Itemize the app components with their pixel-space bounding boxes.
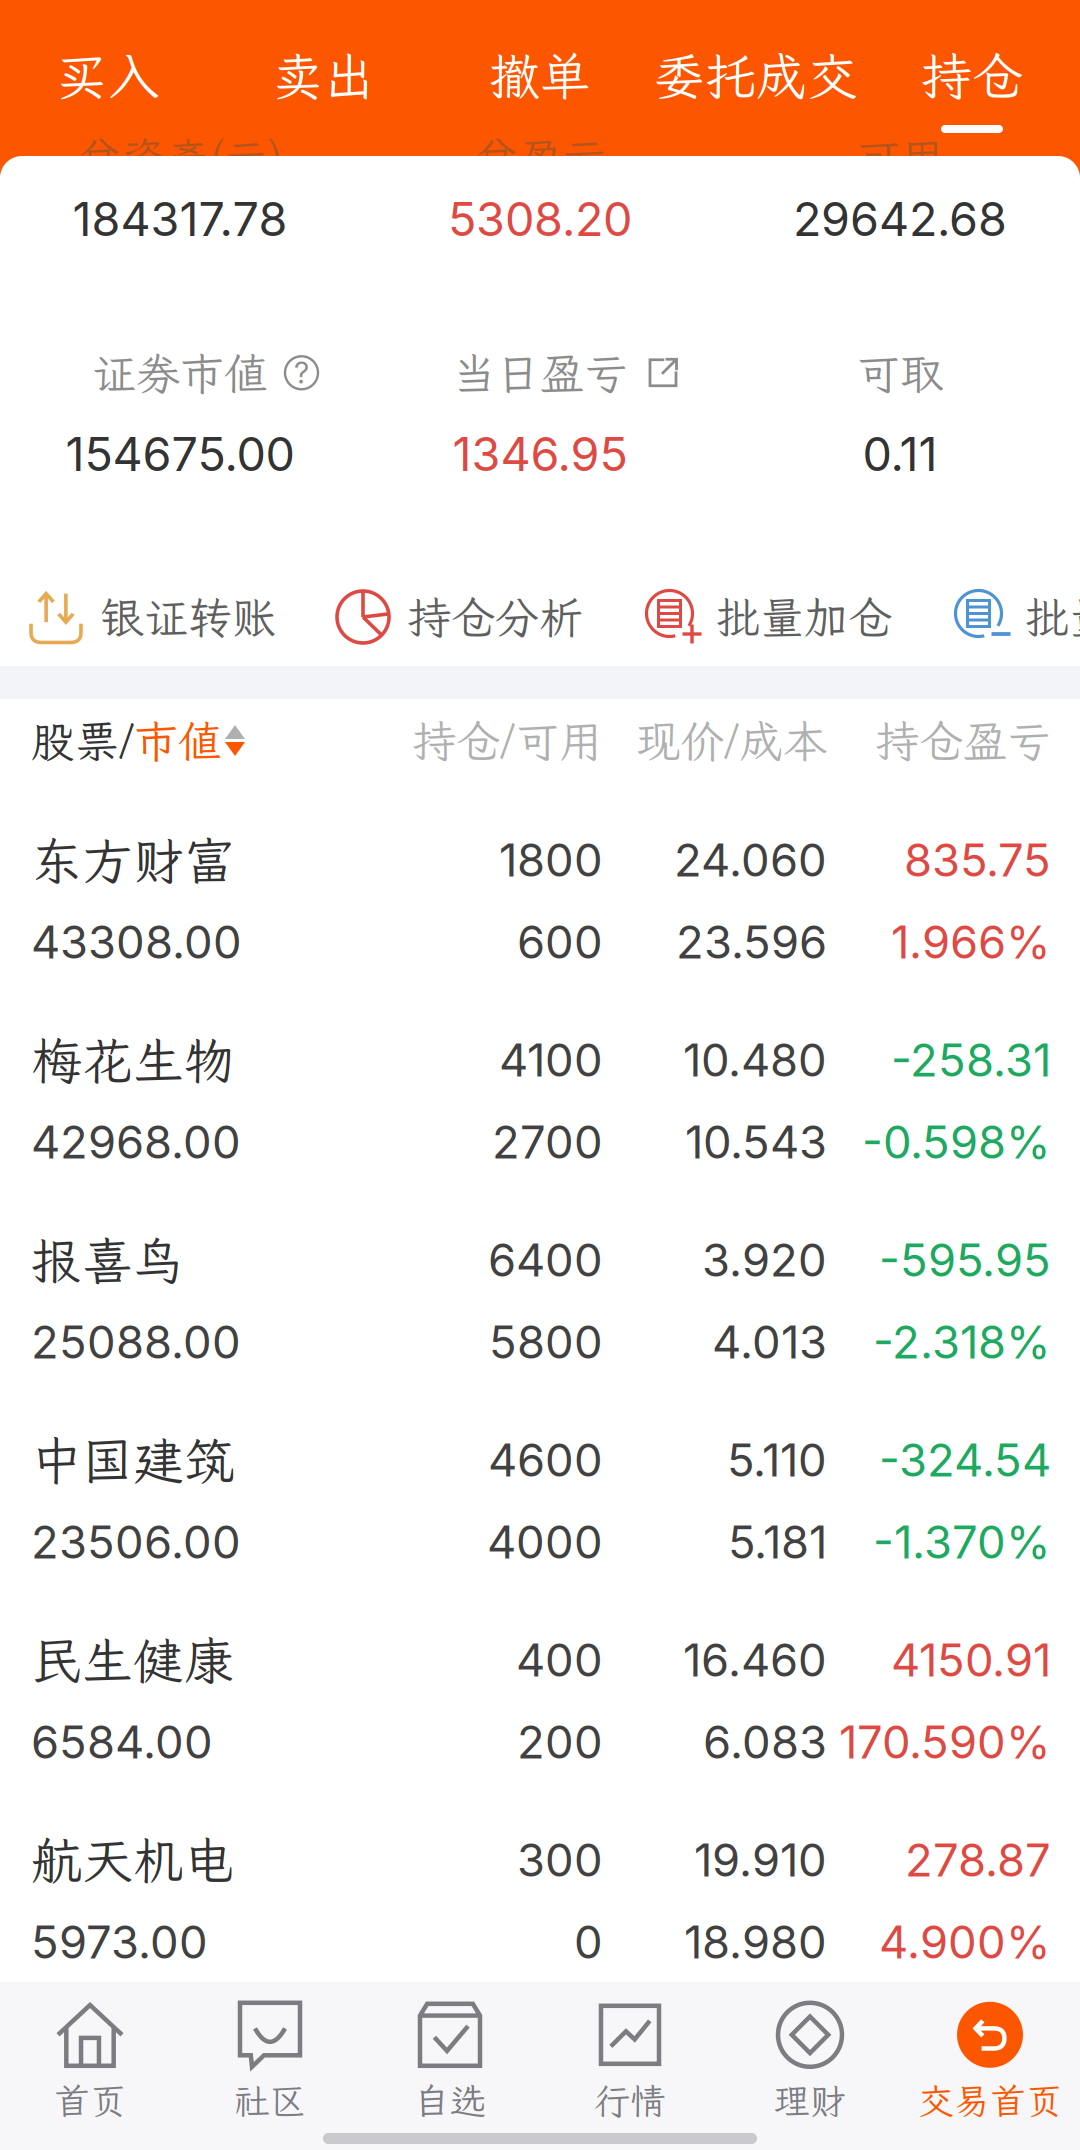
staticText: 1346.95 xyxy=(452,426,627,482)
staticText: -258.31 xyxy=(891,1033,1051,1087)
button[interactable]: 批量加仓 xyxy=(0,579,892,655)
staticText: 5.110 xyxy=(727,1433,827,1487)
staticText: -595.95 xyxy=(879,1233,1051,1287)
staticText: 自选 xyxy=(414,2077,486,2124)
button[interactable]: 自选 xyxy=(360,1982,540,2118)
staticText: 154675.00 xyxy=(65,426,294,482)
button[interactable]: 交易首页 xyxy=(900,1982,1080,2118)
staticText: 航天机电 xyxy=(31,1827,235,1893)
staticText: 6584.00 xyxy=(31,1715,213,1769)
staticText: 持仓分析 xyxy=(407,588,583,646)
staticText: 23506.00 xyxy=(31,1515,241,1569)
staticText: 5.181 xyxy=(728,1515,827,1569)
button[interactable]: 梅花生物 xyxy=(0,982,1080,1182)
staticText: 总资产(元) xyxy=(77,129,283,187)
staticText: 278.87 xyxy=(905,1833,1051,1887)
staticText: 首页 xyxy=(54,2077,126,2124)
staticText: 银证转账 xyxy=(100,588,276,646)
staticText: 600 xyxy=(517,915,603,969)
staticText: 24.060 xyxy=(674,833,827,887)
staticText: -1.370% xyxy=(873,1515,1051,1569)
staticText: 社区 xyxy=(234,2077,306,2124)
staticText: 0 xyxy=(574,1915,603,1969)
button[interactable]: 首页 xyxy=(0,1982,180,2118)
staticText: 300 xyxy=(517,1833,603,1887)
staticText: 400 xyxy=(516,1633,603,1687)
staticText: 批量加仓 xyxy=(716,588,892,646)
staticText: 民生健康 xyxy=(31,1627,235,1693)
staticText: 25088.00 xyxy=(31,1315,241,1369)
staticText: 交易首页 xyxy=(918,2077,1062,2124)
button[interactable]: 卖出 xyxy=(216,0,432,145)
button[interactable]: 委托成交 xyxy=(648,0,864,145)
button[interactable]: 民生健康 xyxy=(0,1582,1080,1782)
button[interactable]: 报喜鸟 xyxy=(0,1182,1080,1382)
button[interactable]: 银证转账 xyxy=(0,579,276,655)
staticText: 5800 xyxy=(489,1315,603,1369)
staticText: 3.920 xyxy=(702,1233,827,1287)
staticText: 可取 xyxy=(856,344,944,402)
staticText: 19.910 xyxy=(694,1833,827,1887)
staticText: 持仓/可用 xyxy=(412,711,603,769)
staticText: 835.75 xyxy=(904,833,1051,887)
staticText: 42968.00 xyxy=(31,1115,241,1169)
staticText: 行情 xyxy=(594,2077,666,2124)
button[interactable]: 中国建筑 xyxy=(0,1382,1080,1582)
staticText: 4100 xyxy=(499,1033,603,1087)
staticText: -2.318% xyxy=(873,1315,1051,1369)
staticText: 可用 xyxy=(856,129,944,187)
button[interactable]: 理财 xyxy=(720,1982,900,2118)
staticText: 理财 xyxy=(774,2077,846,2124)
staticText: 6400 xyxy=(488,1233,603,1287)
staticText: 持仓盈亏 xyxy=(875,711,1051,769)
staticText: 5973.00 xyxy=(31,1915,208,1969)
staticText: 报喜鸟 xyxy=(31,1227,184,1293)
staticText: 4600 xyxy=(488,1433,603,1487)
staticText: 市值 xyxy=(134,711,222,769)
staticText: 梅花生物 xyxy=(31,1027,235,1093)
staticText: 现价/成本 xyxy=(636,711,827,769)
staticText: 18.980 xyxy=(684,1915,827,1969)
staticText: 200 xyxy=(517,1715,603,1769)
staticText: 4.900% xyxy=(879,1915,1051,1969)
staticText: 2700 xyxy=(492,1115,603,1169)
button[interactable]: 批量减仓 xyxy=(0,579,1080,655)
staticText: 总盈亏 xyxy=(474,129,606,187)
staticText: 16.460 xyxy=(683,1633,827,1687)
button[interactable]: 持仓分析 xyxy=(0,579,583,655)
button[interactable]: 持仓 xyxy=(864,0,1080,145)
staticText: -324.54 xyxy=(879,1433,1051,1487)
button[interactable]: 航天机电 xyxy=(0,1782,1080,1982)
staticText: 证券市值 xyxy=(92,344,268,402)
staticText: -0.598% xyxy=(862,1115,1051,1169)
button[interactable]: 行情 xyxy=(540,1982,720,2118)
staticText: 股票/ xyxy=(31,711,134,769)
staticText: 170.590% xyxy=(839,1715,1051,1769)
staticText: 批量减仓 xyxy=(1025,588,1080,646)
staticText: 1.966% xyxy=(891,915,1051,969)
staticText: 中国建筑 xyxy=(31,1427,235,1493)
staticText: 持仓 xyxy=(921,42,1023,109)
button[interactable]: 买入 xyxy=(0,0,216,145)
staticText: 买入 xyxy=(57,42,159,109)
staticText: 0.11 xyxy=(862,426,937,482)
staticText: 5308.20 xyxy=(448,191,632,247)
staticText: 43308.00 xyxy=(31,915,242,969)
staticText: 1800 xyxy=(499,833,603,887)
button[interactable]: 东方财富 xyxy=(0,782,1080,982)
staticText: 当日盈亏 xyxy=(452,344,628,402)
staticText: 29642.68 xyxy=(793,191,1007,247)
staticText: 卖出 xyxy=(273,42,375,109)
staticText: 23.596 xyxy=(676,915,827,969)
staticText: 6.083 xyxy=(703,1715,827,1769)
staticText: ? xyxy=(294,355,309,390)
staticText: 4000 xyxy=(487,1515,603,1569)
button[interactable]: 社区 xyxy=(180,1982,360,2118)
staticText: 东方财富 xyxy=(31,827,235,893)
staticText: 10.543 xyxy=(685,1115,827,1169)
button[interactable]: 撤单 xyxy=(432,0,648,145)
staticText: 委托成交 xyxy=(654,42,858,109)
staticText: 4.013 xyxy=(712,1315,827,1369)
staticText: 184317.78 xyxy=(72,191,287,247)
staticText: 10.480 xyxy=(683,1033,827,1087)
